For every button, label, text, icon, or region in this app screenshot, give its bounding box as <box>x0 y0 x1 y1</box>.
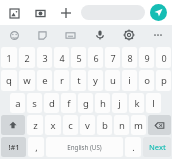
staticText: j <box>118 97 121 110</box>
staticText: g <box>83 97 89 110</box>
button[interactable]: Emoji <box>0 25 28 45</box>
button[interactable]: b <box>97 115 112 135</box>
staticText: e <box>42 74 48 87</box>
staticText: x <box>50 119 56 132</box>
button[interactable]: j <box>112 93 127 113</box>
button[interactable]: m <box>131 115 146 135</box>
button[interactable]: x <box>45 115 61 135</box>
staticText: 7 <box>110 52 116 64</box>
button[interactable]: Voice input <box>85 25 114 45</box>
button[interactable]: Shift <box>1 115 25 135</box>
staticText: 6 <box>93 52 99 64</box>
button[interactable]: z <box>27 115 43 135</box>
button[interactable]: c <box>63 115 78 135</box>
button[interactable]: 7 <box>105 47 120 68</box>
button[interactable]: Stickers <box>28 25 56 45</box>
button[interactable]: a <box>10 93 25 113</box>
button[interactable]: r <box>54 70 69 91</box>
button[interactable]: 3 <box>37 47 52 68</box>
button[interactable]: 4 <box>54 47 69 68</box>
button[interactable]: Camera <box>31 4 49 22</box>
button[interactable]: n <box>114 115 129 135</box>
button[interactable]: l <box>146 93 161 113</box>
button[interactable]: w <box>19 70 35 91</box>
staticText: w <box>23 74 31 87</box>
button[interactable]: q <box>1 70 17 91</box>
button[interactable]: 6 <box>88 47 103 68</box>
button[interactable]: Next <box>143 137 171 157</box>
button[interactable]: v <box>80 115 95 135</box>
staticText: k <box>134 97 140 110</box>
button[interactable]: 8 <box>122 47 137 68</box>
button[interactable]: f <box>61 93 76 113</box>
staticText: b <box>102 119 108 132</box>
staticText: q <box>6 74 12 87</box>
button[interactable]: English (US) <box>46 137 123 157</box>
button[interactable]: o <box>139 70 154 91</box>
staticText: o <box>144 74 150 87</box>
button[interactable]: d <box>44 93 59 113</box>
staticText: m <box>134 119 143 132</box>
button[interactable]: y <box>88 70 103 91</box>
button[interactable]: . <box>125 137 141 157</box>
staticText: v <box>85 119 90 132</box>
button[interactable]: 2 <box>19 47 35 68</box>
staticText: English (US) <box>67 143 102 151</box>
button[interactable]: Backspace <box>148 115 171 135</box>
staticText: 9 <box>144 52 150 64</box>
button[interactable]: !#1 <box>1 137 26 157</box>
button[interactable]: h <box>95 93 110 113</box>
staticText: l <box>152 97 155 110</box>
staticText: f <box>67 97 71 110</box>
staticText: h <box>100 97 106 110</box>
staticText: d <box>49 97 55 110</box>
staticText: !#1 <box>8 142 20 152</box>
button[interactable]: g <box>78 93 93 113</box>
button[interactable]: u <box>105 70 120 91</box>
staticText: p <box>161 74 167 87</box>
button[interactable]: Gallery <box>5 4 23 22</box>
staticText: 2 <box>24 52 30 64</box>
staticText: z <box>33 119 38 132</box>
button[interactable] <box>81 5 145 20</box>
button[interactable]: 9 <box>139 47 154 68</box>
button[interactable]: Send <box>150 4 167 21</box>
staticText: , <box>35 141 38 153</box>
staticText: u <box>110 74 116 87</box>
button[interactable]: p <box>156 70 171 91</box>
button[interactable]: k <box>129 93 144 113</box>
staticText: 1 <box>6 52 12 64</box>
staticText: 0 <box>161 52 167 64</box>
button[interactable]: GIF <box>56 25 85 45</box>
button[interactable]: t <box>71 70 86 91</box>
staticText: 8 <box>127 52 133 64</box>
staticText: c <box>68 119 73 132</box>
staticText: s <box>32 97 37 110</box>
staticText: . <box>132 141 135 153</box>
button[interactable]: 5 <box>71 47 86 68</box>
staticText: a <box>15 97 21 110</box>
staticText: t <box>77 74 81 87</box>
button[interactable]: , <box>28 137 44 157</box>
staticText: 3 <box>42 52 48 64</box>
button[interactable]: Settings <box>114 25 143 45</box>
button[interactable]: Add <box>57 4 75 22</box>
button[interactable]: i <box>122 70 137 91</box>
staticText: 4 <box>59 52 65 64</box>
staticText: r <box>60 74 64 87</box>
staticText: i <box>128 74 131 87</box>
staticText: 5 <box>76 52 82 64</box>
button[interactable]: e <box>37 70 52 91</box>
staticText: n <box>119 119 125 132</box>
button[interactable]: 0 <box>156 47 171 68</box>
staticText: Next <box>149 142 166 152</box>
button[interactable]: s <box>27 93 42 113</box>
button[interactable]: 1 <box>1 47 17 68</box>
staticText: y <box>93 74 98 87</box>
button[interactable]: More options <box>143 25 172 45</box>
